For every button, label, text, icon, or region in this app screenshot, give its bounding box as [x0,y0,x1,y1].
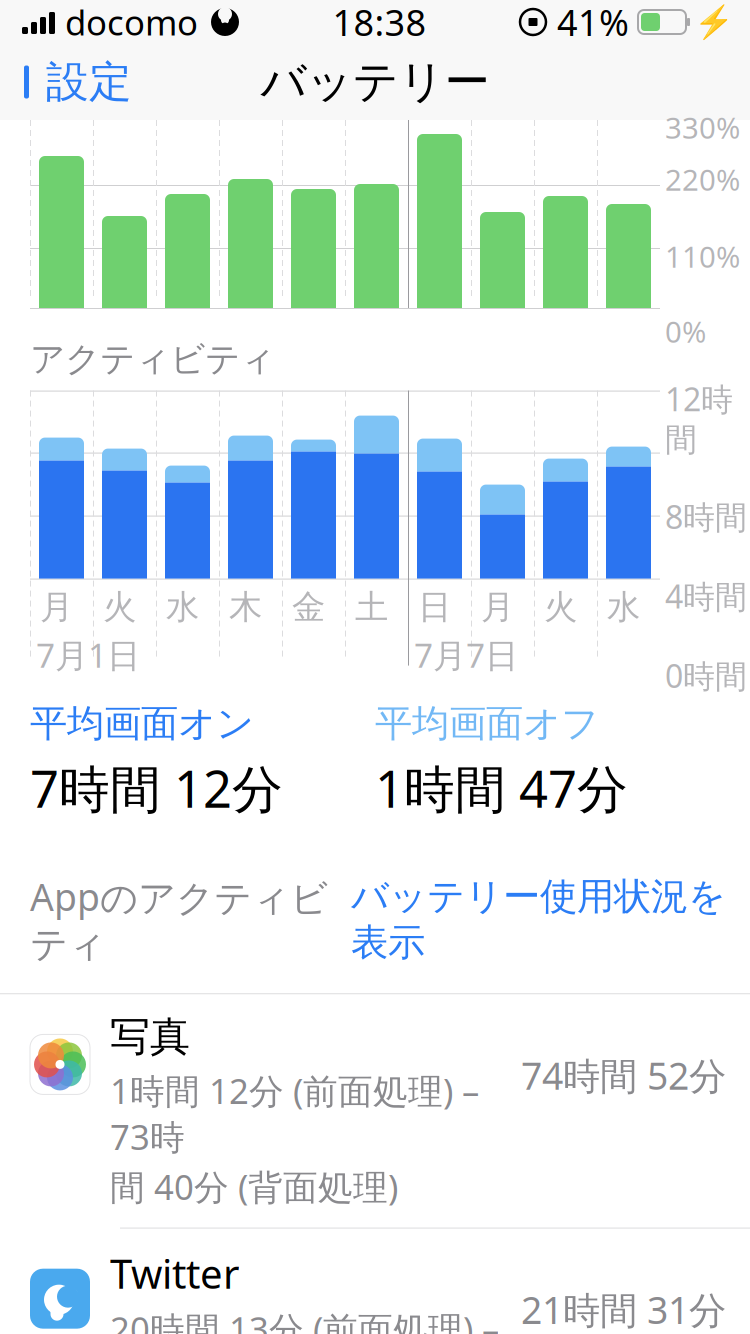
staticText: 日 [418,587,451,627]
staticText: 金 [292,587,325,627]
staticText: 110% [665,237,740,276]
staticText: 水 [166,587,199,627]
staticText: 間 40分 (背面処理) [110,1164,398,1210]
staticText: 月 [40,587,73,627]
staticText: 設定 [46,56,132,108]
staticText: 火 [544,587,577,627]
staticText: 7月7日 [414,633,518,677]
staticText: 4時間 [665,575,747,617]
button[interactable]: 写真 [0,994,750,1228]
staticText: 火 [103,587,136,627]
staticText: バッテリー [260,54,489,110]
staticText: 0% [665,312,706,351]
staticText: 41% [557,0,629,46]
button[interactable]: Twitter [0,1229,750,1334]
staticText: ⚡ [694,4,734,40]
staticText: 7時間 12分 [30,754,283,822]
staticText: 水 [607,587,640,627]
staticText: アクティビティ [30,338,275,381]
staticText: 18:38 [332,0,426,46]
staticText: バッテリー使用状況を表示 [351,874,726,965]
staticText: 月 [481,587,514,627]
staticText: 平均画面オフ [375,701,599,746]
staticText: 74時間 52分 [521,1050,726,1100]
staticText: 木 [229,587,262,627]
button[interactable]: 設定 [0,48,132,116]
staticText: 21時間 31分 [521,1285,726,1334]
staticText: 0時間 [665,654,747,697]
staticText: 1時間 47分 [375,754,628,822]
staticText: 220% [665,160,740,199]
staticText: 写真 [110,1012,190,1061]
staticText: 1時間 12分 (前面処理) – 73時 [110,1068,479,1160]
staticText: 20時間 13分 (前面処理) – 1時 [110,1306,499,1334]
staticText: Twitter [110,1247,240,1300]
staticText: 330% [665,108,740,147]
staticText: Appのアクティビティ [30,872,328,967]
button[interactable]: バッテリー使用状況を表示 [351,868,750,971]
staticText: 土 [355,587,388,627]
staticText: 7月1日 [36,633,140,677]
staticText: 平均画面オン [30,701,254,746]
staticText: docomo [65,0,198,45]
staticText: 8時間 [665,495,747,538]
staticText: 12時間 [665,378,733,459]
